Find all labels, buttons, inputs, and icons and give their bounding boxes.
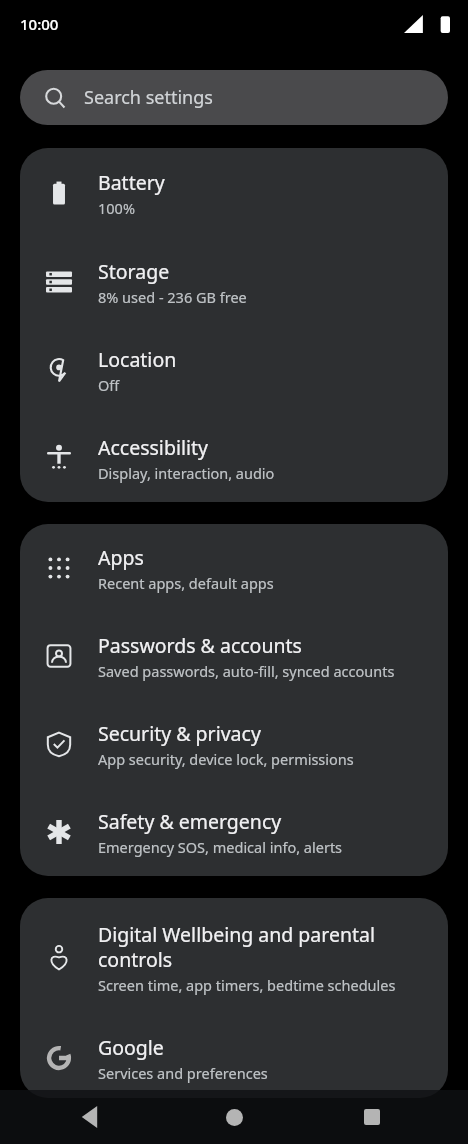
- button[interactable]: Battery: [20, 148, 448, 238]
- staticText: Passwords & accounts: [98, 632, 302, 659]
- staticText: Search settings: [84, 85, 213, 110]
- button[interactable]: Home: [212, 1095, 256, 1139]
- button[interactable]: Storage: [20, 238, 448, 326]
- staticText: Emergency SOS, medical info, alerts: [98, 837, 343, 857]
- staticText: 10:00: [20, 14, 59, 34]
- button[interactable]: Passwords & accounts: [20, 612, 448, 700]
- staticText: 100%: [98, 198, 135, 218]
- button[interactable]: Recent apps: [350, 1095, 394, 1139]
- button[interactable]: Safety & emergency: [20, 788, 448, 876]
- staticText: Saved passwords, auto-fill, synced accou…: [98, 661, 395, 681]
- staticText: Apps: [98, 544, 144, 571]
- staticText: Security & privacy: [98, 720, 261, 747]
- staticText: App security, device lock, permissions: [98, 749, 354, 769]
- button[interactable]: Search settings: [20, 70, 448, 125]
- button[interactable]: Location: [20, 326, 448, 414]
- staticText: 8% used - 236 GB free: [98, 287, 247, 307]
- staticText: Location: [98, 346, 177, 373]
- staticText: Display, interaction, audio: [98, 463, 275, 483]
- staticText: Off: [98, 375, 120, 395]
- button[interactable]: Apps: [20, 524, 448, 612]
- staticText: Battery: [98, 169, 165, 196]
- staticText: Storage: [98, 258, 170, 285]
- button[interactable]: Digital Wellbeing and parental controls: [20, 898, 448, 1018]
- staticText: Google: [98, 1034, 164, 1061]
- staticText: Digital Wellbeing and parental controls: [98, 921, 430, 973]
- staticText: Safety & emergency: [98, 808, 282, 835]
- button[interactable]: Back: [80, 1106, 102, 1128]
- button[interactable]: Google: [20, 1018, 448, 1098]
- staticText: Services and preferences: [98, 1063, 268, 1083]
- staticText: Accessibility: [98, 434, 208, 461]
- button[interactable]: Security & privacy: [20, 700, 448, 788]
- staticText: Recent apps, default apps: [98, 573, 274, 593]
- staticText: Screen time, app timers, bedtime schedul…: [98, 975, 396, 995]
- button[interactable]: Accessibility: [20, 414, 448, 502]
